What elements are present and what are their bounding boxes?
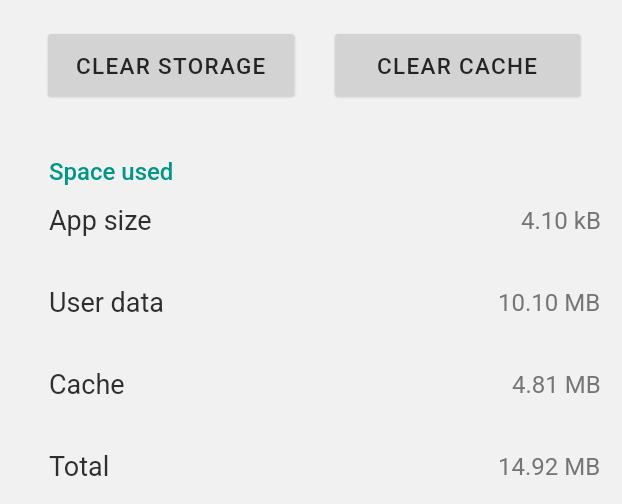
staticText: 4.10 kB xyxy=(521,207,601,235)
staticText: CLEAR CACHE xyxy=(377,53,539,79)
staticText: 10.10 MB xyxy=(498,289,601,317)
staticText: Total xyxy=(49,451,110,483)
button[interactable]: App size xyxy=(0,178,622,260)
staticText: Cache xyxy=(49,369,125,401)
staticText: 14.92 MB xyxy=(498,453,601,481)
staticText: CLEAR STORAGE xyxy=(76,53,267,79)
button[interactable]: User data xyxy=(0,260,622,342)
staticText: User data xyxy=(49,287,165,319)
staticText: App size xyxy=(49,205,152,237)
button[interactable]: CLEAR STORAGE xyxy=(48,34,294,96)
staticText: 4.81 MB xyxy=(512,371,601,399)
button[interactable]: Cache xyxy=(0,342,622,424)
button[interactable]: Total xyxy=(0,424,622,504)
button[interactable]: CLEAR CACHE xyxy=(335,34,580,96)
staticText: Space used xyxy=(49,158,174,186)
